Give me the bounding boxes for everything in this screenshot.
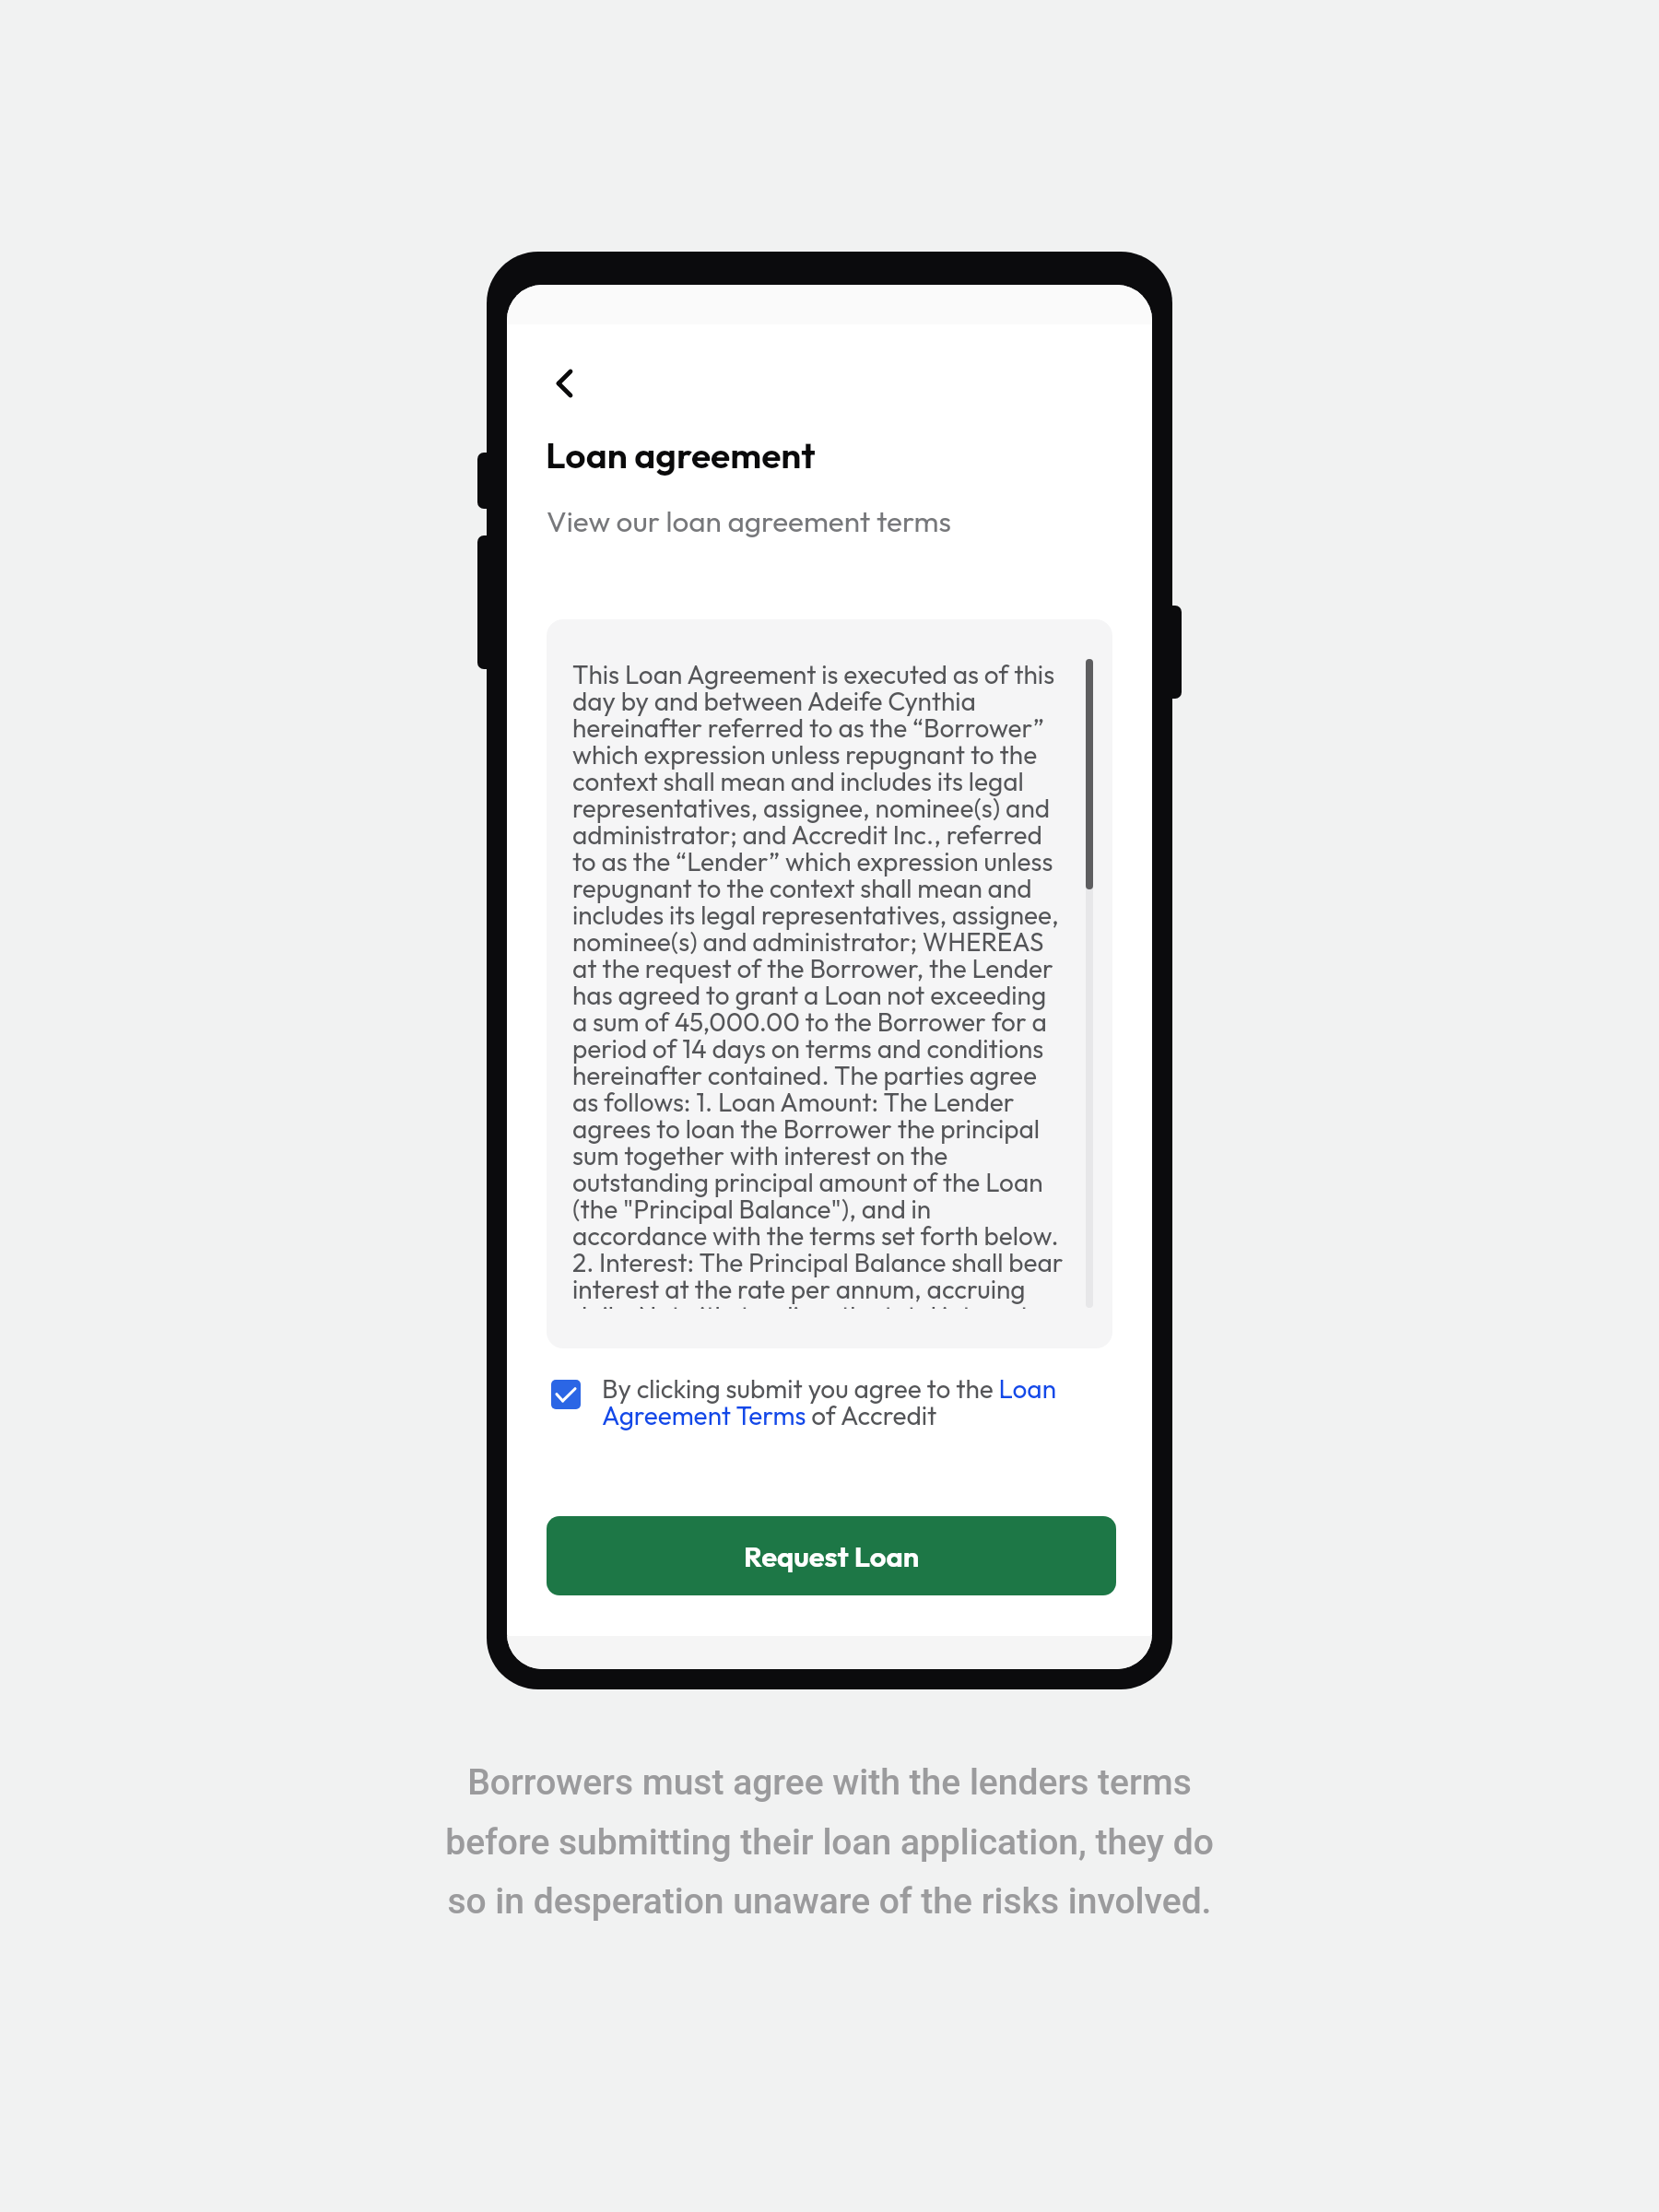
button[interactable]: Back	[534, 353, 594, 414]
staticText: This Loan Agreement is executed as of th…	[572, 658, 1065, 1309]
button[interactable]: By clicking submit you agree to the Loan…	[551, 1372, 1104, 1431]
staticText: Request Loan	[744, 1538, 920, 1574]
staticText: By clicking submit you agree to the Loan…	[602, 1372, 1104, 1431]
staticText: View our loan agreement terms	[547, 502, 952, 539]
button[interactable]: Request Loan	[547, 1516, 1116, 1595]
staticText: Loan agreement	[546, 432, 816, 477]
staticText: Borrowers must agree with the lenders te…	[445, 1761, 1214, 1922]
